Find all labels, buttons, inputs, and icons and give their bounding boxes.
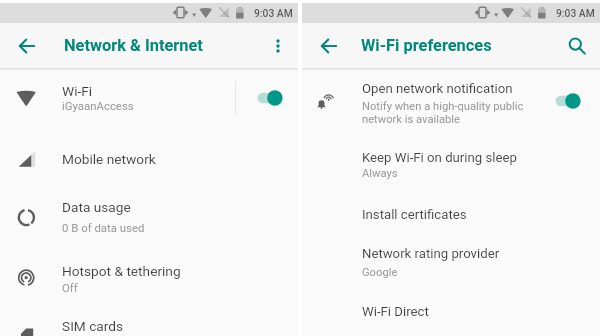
staticText: Google [362, 266, 398, 279]
staticText: Wi-Fi Direct [362, 304, 429, 319]
button[interactable]: Toggle switch [555, 90, 589, 112]
staticText: Network & Internet [64, 36, 203, 55]
button[interactable]: Data usage [0, 178, 298, 236]
staticText: SIM cards [62, 318, 124, 334]
button[interactable]: Search [562, 31, 592, 61]
staticText: Install certificates [362, 207, 467, 222]
staticText: Keep Wi-Fi on during sleep [362, 150, 517, 165]
staticText: Data usage [62, 199, 131, 215]
staticText: Wi-Fi [62, 83, 93, 99]
staticText: iGyaanAccess [62, 99, 134, 112]
staticText: Network rating provider [362, 246, 500, 261]
button[interactable]: SIM cards [0, 298, 298, 336]
button[interactable]: Open network notification [302, 68, 600, 136]
button[interactable]: Back [10, 29, 44, 63]
button[interactable]: Wi-Fi Direct [302, 296, 600, 336]
staticText: Hotspot & tethering [62, 263, 181, 279]
button[interactable]: Hotspot & tethering [0, 236, 298, 298]
button[interactable]: Keep Wi-Fi on during sleep [302, 136, 600, 192]
staticText: 0 B of data used [62, 221, 145, 234]
button[interactable]: Install certificates [302, 192, 600, 240]
button[interactable]: More options [263, 31, 293, 61]
staticText: 9:03 AM [556, 7, 595, 19]
staticText: Open network notification [362, 81, 513, 96]
staticText: Off [62, 281, 78, 294]
button[interactable]: Network rating provider [302, 240, 600, 296]
button[interactable]: Back [312, 29, 346, 63]
staticText: Wi-Fi preferences [361, 36, 492, 55]
staticText: Always [362, 167, 398, 180]
button[interactable]: Toggle switch [257, 87, 291, 109]
button[interactable]: Wi-Fi [0, 68, 298, 126]
staticText: Notify when a high-quality public networ… [362, 100, 524, 126]
button[interactable]: Mobile network [0, 126, 298, 178]
staticText: Mobile network [62, 151, 156, 167]
staticText: 9:03 AM [254, 7, 293, 19]
